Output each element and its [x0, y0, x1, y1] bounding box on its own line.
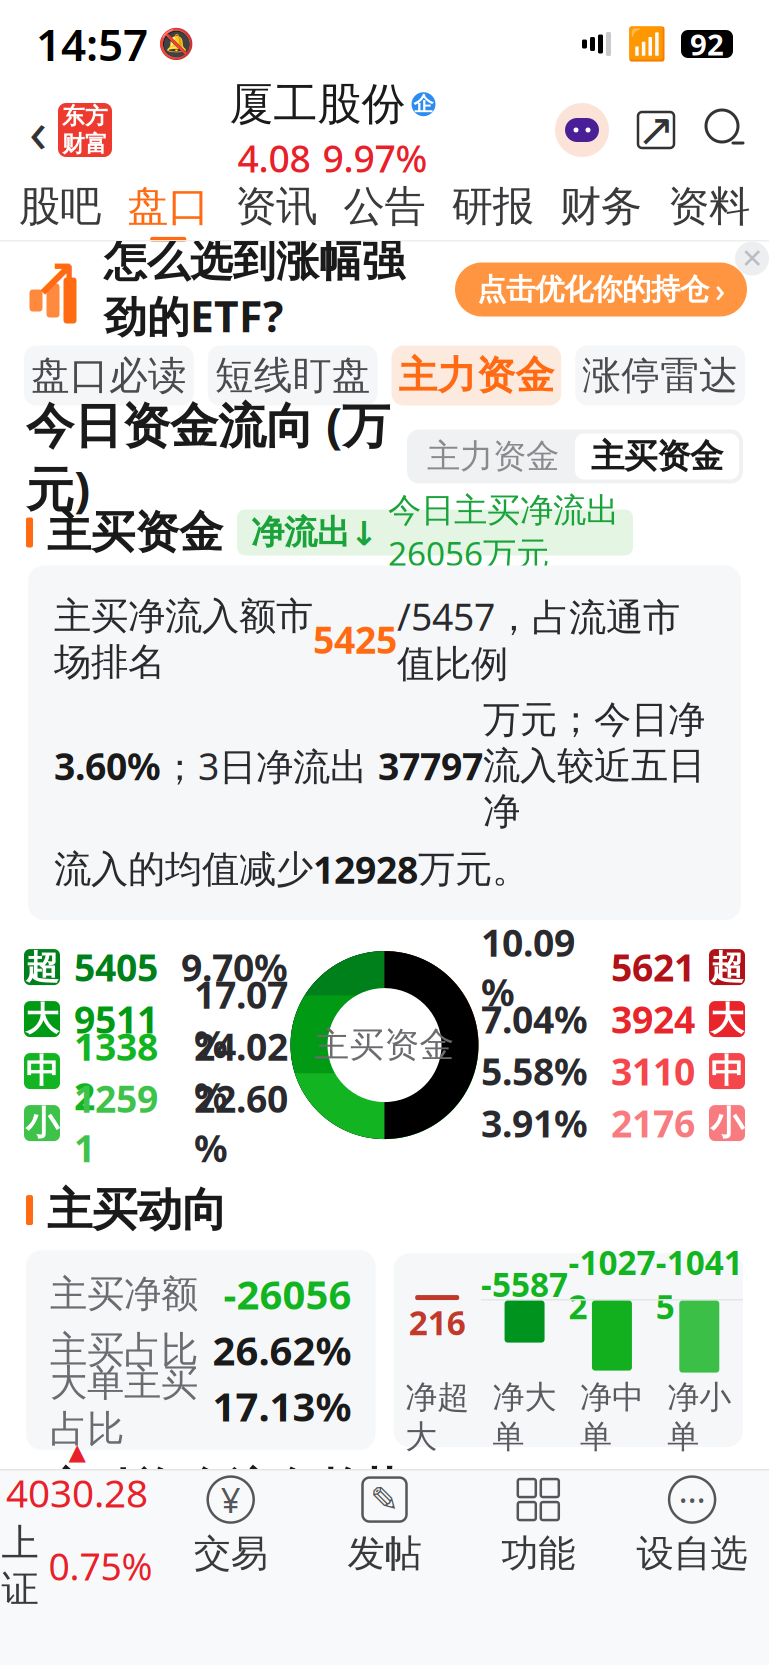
staticText: 东方 [62, 102, 108, 130]
staticText: 3.60% [54, 741, 161, 790]
staticText: -5587 [481, 1262, 568, 1306]
staticText: 小 [25, 1103, 58, 1143]
staticText: 今日资金流向 (万元) [26, 393, 390, 520]
staticText: 主力资金 [427, 436, 559, 477]
button[interactable]: ¥ [154, 1470, 308, 1580]
staticText: ；3日净流出 [161, 741, 378, 790]
staticText: 超 [710, 947, 743, 987]
staticText: 5405 [74, 942, 158, 992]
staticText: 超 [25, 947, 58, 987]
button[interactable]: 东方财富 [58, 103, 112, 157]
button[interactable]: 盘口必读 [24, 345, 194, 405]
button[interactable]: ··· [615, 1470, 769, 1580]
staticText: 22.60% [194, 1073, 288, 1173]
staticText: 财务 [560, 181, 642, 232]
button[interactable]: 主力资金 [391, 345, 561, 405]
staticText: 大单主买占比 [50, 1360, 198, 1452]
staticText: 怎么选到涨幅强劲的ETF? [104, 235, 405, 344]
staticText: 万元；今日净流入较近五日净 [483, 697, 705, 834]
staticText: 主买动向 [47, 1182, 227, 1238]
staticText: -10415 [656, 1240, 743, 1328]
staticText: 厦工股份 [229, 77, 405, 131]
button[interactable]: ✎ [308, 1470, 461, 1580]
staticText: 流入的均值减少 [54, 846, 313, 892]
staticText: 10.09% [481, 917, 575, 1017]
staticText: 中 [25, 1051, 58, 1091]
staticText: 13382 [74, 1021, 158, 1121]
staticText: 净小单 [667, 1378, 731, 1456]
staticText: 净中单 [580, 1378, 644, 1456]
staticText: /5457，占流通市值比例 [397, 591, 680, 687]
button[interactable]: ▲ [0, 1470, 154, 1580]
staticText: 5.58% [481, 1046, 588, 1096]
button[interactable]: 搜索 [701, 105, 751, 155]
staticText: 涨停雷达 [582, 352, 738, 399]
staticText: ✎ [370, 1480, 399, 1519]
staticText: 37797 [378, 741, 483, 790]
staticText: 净超大 [405, 1378, 469, 1456]
staticText: ▲ [68, 1439, 85, 1465]
staticText: 17.13% [212, 1379, 351, 1433]
staticText: › [715, 268, 725, 311]
staticText: 主买净流入 (万元) [56, 1537, 339, 1585]
staticText: 主买净额 [50, 1271, 198, 1317]
staticText: 12591 [74, 1073, 158, 1173]
staticText: ✕ [741, 243, 763, 274]
button[interactable]: 返回 [18, 102, 58, 158]
button[interactable]: 短线盯盘 [208, 345, 378, 405]
button[interactable]: 盘口 [114, 175, 222, 237]
staticText: 3924 [611, 994, 695, 1044]
button[interactable]: 股吧 [6, 175, 114, 237]
staticText: -10272 [568, 1240, 655, 1328]
button[interactable]: 关闭 [735, 241, 769, 275]
button[interactable]: 研报 [439, 175, 547, 237]
staticText: 📶 [627, 26, 667, 62]
staticText: 92 [690, 24, 724, 63]
staticText: 主买资金 [314, 1024, 454, 1066]
staticText: ‹ [29, 91, 47, 169]
staticText: 小 [710, 1103, 743, 1143]
button[interactable]: 涨停雷达 [575, 345, 745, 405]
staticText: 万元。 [418, 846, 529, 892]
staticText: 9.97% [322, 133, 427, 183]
staticText: 9.70% [181, 942, 288, 992]
button[interactable]: 公告 [330, 175, 438, 237]
staticText: 股价 (元) [399, 1537, 538, 1585]
staticText: 短线盯盘 [215, 352, 371, 399]
staticText: 上证 [1, 1520, 38, 1612]
button[interactable]: 功能 [461, 1470, 615, 1580]
button[interactable]: 主买资金 [575, 433, 739, 479]
button[interactable]: 分享 [633, 107, 679, 153]
staticText: 4.08 [237, 133, 310, 183]
button[interactable]: 资讯 [222, 175, 330, 237]
button[interactable]: 财务 [547, 175, 655, 237]
staticText: 中 [710, 1051, 743, 1091]
staticText: 主买占比 [50, 1327, 198, 1373]
staticText: 股吧 [19, 181, 101, 232]
staticText: ··· [679, 1477, 706, 1523]
button[interactable]: ↗ [0, 241, 769, 337]
staticText: -26056 [223, 1267, 351, 1321]
staticText: 14:57 [36, 15, 148, 73]
staticText: 资讯 [235, 181, 317, 232]
staticText: 12928 [313, 844, 418, 894]
staticText: 主买资金 [47, 505, 223, 559]
staticText: 公告 [343, 181, 425, 232]
button[interactable]: 资料 [655, 175, 763, 237]
staticText: 主力资金 [398, 352, 554, 399]
staticText: 24.02% [194, 1021, 288, 1121]
staticText: 3.91% [481, 1098, 588, 1148]
staticText: ¥ [221, 1477, 241, 1523]
staticText: 财富 [62, 130, 108, 158]
staticText: 大 [25, 999, 58, 1039]
staticText: 点击优化你的持仓 [477, 271, 709, 307]
staticText: 盘口 [127, 181, 209, 232]
button[interactable]: 主力资金 [411, 433, 575, 479]
staticText: 研报 [452, 181, 534, 232]
staticText: 净大单 [493, 1378, 557, 1456]
staticText: 🔕 [158, 27, 195, 61]
staticText: 26.62% [212, 1323, 351, 1377]
staticText: 3110 [611, 1046, 695, 1096]
button[interactable]: AI 助手 [553, 101, 611, 159]
staticText: 盘口必读 [31, 352, 187, 399]
